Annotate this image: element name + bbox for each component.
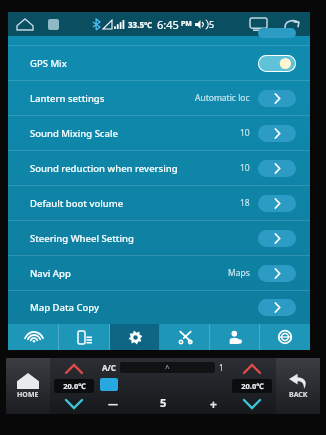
button[interactable]: GPS Mix (8, 46, 310, 80)
staticText: + (210, 396, 217, 410)
button[interactable]: Fan down (100, 396, 126, 410)
staticText: Automatic loc (195, 92, 250, 104)
staticText: A/C (102, 362, 116, 373)
staticText: Steering Wheel Setting (30, 232, 134, 245)
staticText: 20.0℃ (241, 381, 264, 391)
staticText: PM (181, 19, 192, 29)
button[interactable]: Open (258, 125, 296, 142)
button[interactable]: Sound reduction when reversing (8, 151, 310, 185)
button[interactable]: Recents (246, 12, 270, 36)
button[interactable]: Home (14, 13, 36, 35)
staticText: Sound reduction when reversing (30, 162, 178, 175)
staticText: Navi App (30, 267, 71, 280)
button[interactable]: Open (258, 160, 296, 177)
staticText: Lantern settings (30, 92, 105, 105)
button[interactable]: Device (59, 324, 110, 350)
button[interactable]: Sound Mixing Scale (8, 116, 310, 150)
staticText: 10 (240, 162, 250, 174)
button[interactable]: Fan up (200, 396, 226, 410)
button[interactable]: Navi App (8, 256, 310, 290)
button[interactable]: A/C on (100, 378, 118, 391)
button[interactable]: Temperature up (61, 363, 87, 375)
staticText: 6:45 (157, 17, 179, 32)
button[interactable]: Open (258, 90, 296, 107)
staticText: HOME (17, 390, 39, 400)
button[interactable]: Settings (110, 324, 160, 350)
button[interactable]: Back (280, 12, 304, 36)
button[interactable]: Lantern settings (8, 81, 310, 115)
staticText: GPS Mix (30, 57, 67, 70)
button[interactable]: Default boot volume (8, 186, 310, 220)
staticText: Default boot volume (30, 197, 124, 210)
staticText: — (108, 396, 118, 410)
staticText: Sound Mixing Scale (30, 127, 118, 140)
staticText: 18 (240, 197, 250, 209)
button[interactable]: Tools (160, 324, 210, 350)
button[interactable]: Browser (260, 324, 310, 350)
button[interactable]: Temperature down (239, 398, 265, 410)
staticText: 1 (219, 362, 224, 373)
button[interactable]: Steering Wheel Setting (8, 221, 310, 255)
staticText: 10 (240, 127, 250, 139)
button[interactable]: Airflow (120, 362, 215, 373)
button[interactable]: HOME (6, 358, 50, 414)
button[interactable]: Wi-Fi (8, 324, 59, 350)
staticText: Map Data Copy (30, 301, 99, 314)
staticText: 20.0℃ (63, 381, 86, 391)
button[interactable]: Open (258, 299, 296, 316)
button[interactable]: Open (258, 195, 296, 212)
button[interactable]: Account (210, 324, 260, 350)
button[interactable]: Recents app (44, 15, 62, 33)
staticText: 5 (160, 395, 167, 410)
staticText: 33.5℃ (128, 19, 153, 30)
button[interactable]: GPS Mix toggle (258, 55, 296, 72)
button[interactable]: Open (258, 265, 296, 282)
staticText: Maps (228, 267, 250, 279)
staticText: 5 (209, 18, 215, 30)
staticText: BACK (289, 390, 308, 400)
button[interactable]: Option (258, 28, 296, 38)
button[interactable]: BACK (276, 358, 320, 414)
staticText: ^ (165, 362, 170, 373)
button[interactable]: Open (258, 230, 296, 247)
button[interactable]: Temperature down (61, 398, 87, 410)
button[interactable]: Temperature up (239, 363, 265, 375)
button[interactable]: Map Data Copy (8, 291, 310, 324)
